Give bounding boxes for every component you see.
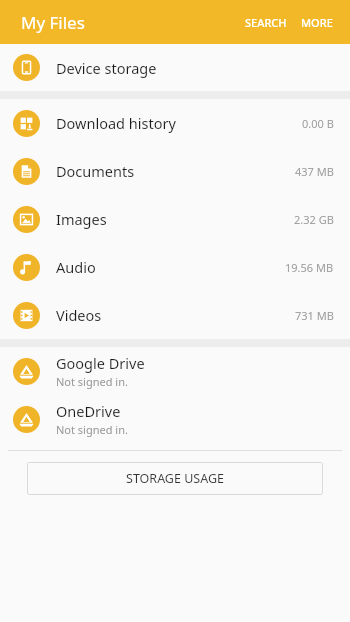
staticText: 19.56 MB [285,260,334,275]
button[interactable]: MORE [294,7,340,38]
button[interactable]: Device storage [0,44,350,91]
staticText: Images [56,209,107,229]
staticText: Videos [56,305,102,325]
staticText: Documents [56,161,135,181]
button[interactable]: STORAGE USAGE [27,462,323,495]
button[interactable]: Documents [0,147,350,195]
button[interactable]: Audio [0,243,350,291]
button[interactable]: Images [0,195,350,243]
staticText: Download history [56,113,176,133]
button[interactable]: SEARCH [238,7,294,38]
staticText: Audio [56,257,96,277]
staticText: Device storage [56,58,157,78]
staticText: STORAGE USAGE [126,470,224,487]
staticText: 2.32 GB [294,212,334,227]
staticText: MORE [301,15,333,30]
staticText: My Files [21,11,85,34]
button[interactable]: Videos [0,291,350,339]
staticText: Not signed in. [56,422,128,437]
staticText: 0.00 B [302,116,334,131]
button[interactable]: Google Drive [0,347,350,395]
staticText: OneDrive [56,401,121,421]
staticText: Google Drive [56,353,145,373]
button[interactable]: Download history [0,99,350,147]
button[interactable]: OneDrive [0,395,350,443]
staticText: Not signed in. [56,374,128,389]
staticText: 437 MB [295,164,334,179]
staticText: 731 MB [295,308,334,323]
staticText: SEARCH [245,15,287,30]
